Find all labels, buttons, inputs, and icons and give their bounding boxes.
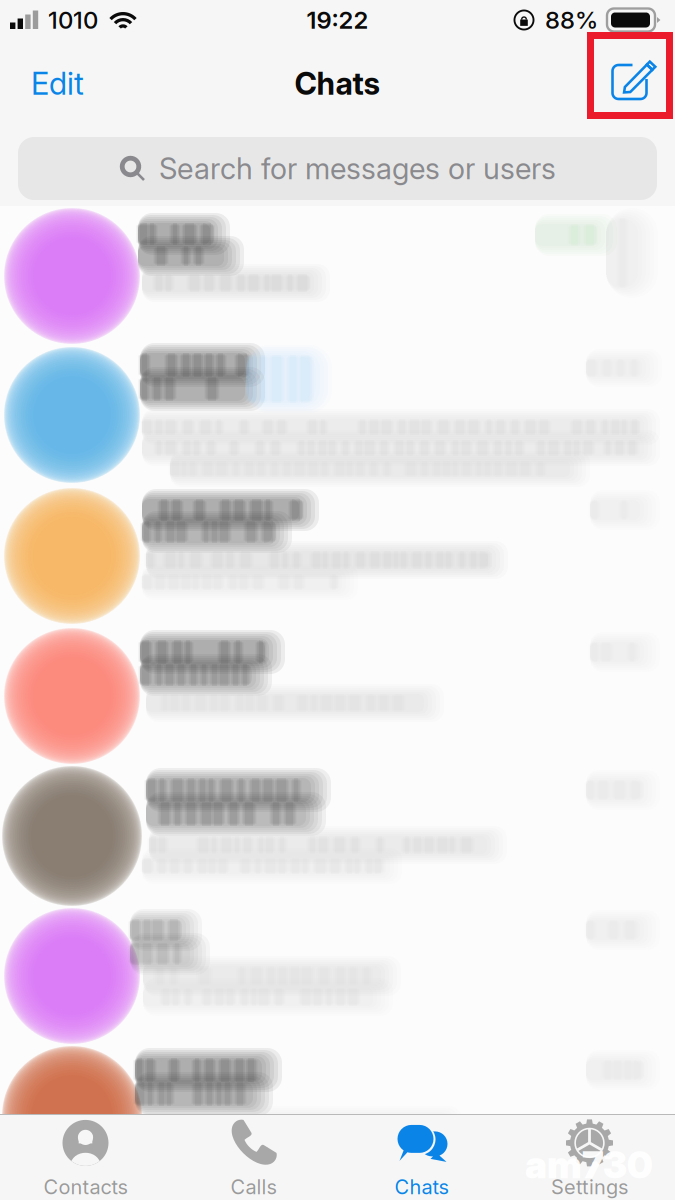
staticText: Settings (551, 1175, 628, 1199)
staticText: 19:22 (306, 5, 368, 34)
button[interactable]: Conversation (0, 346, 675, 486)
staticText: am730 (525, 1142, 653, 1187)
button[interactable]: Conversation (0, 906, 675, 1046)
button[interactable]: Chats (337, 1115, 505, 1200)
staticText: Chats (394, 1175, 448, 1199)
button[interactable]: Conversation (0, 206, 675, 346)
staticText: 88% (545, 5, 598, 34)
button[interactable]: Calls (169, 1115, 337, 1200)
button[interactable]: Conversation (0, 1046, 675, 1186)
button[interactable]: Settings (505, 1115, 673, 1200)
staticText: Chats (294, 65, 380, 102)
button[interactable]: Contacts (1, 1115, 169, 1200)
button[interactable]: Conversation (0, 486, 675, 626)
button[interactable]: Search (18, 137, 657, 200)
staticText: Edit (31, 65, 84, 102)
staticText: Search for messages or users (159, 151, 556, 186)
staticText: Contacts (43, 1175, 127, 1199)
button[interactable]: Compose (587, 32, 673, 135)
staticText: 1010 (48, 5, 98, 34)
button[interactable]: Conversation (0, 766, 675, 906)
button[interactable]: Conversation (0, 626, 675, 766)
button[interactable]: Edit (16, 52, 99, 115)
staticText: Calls (230, 1175, 276, 1199)
